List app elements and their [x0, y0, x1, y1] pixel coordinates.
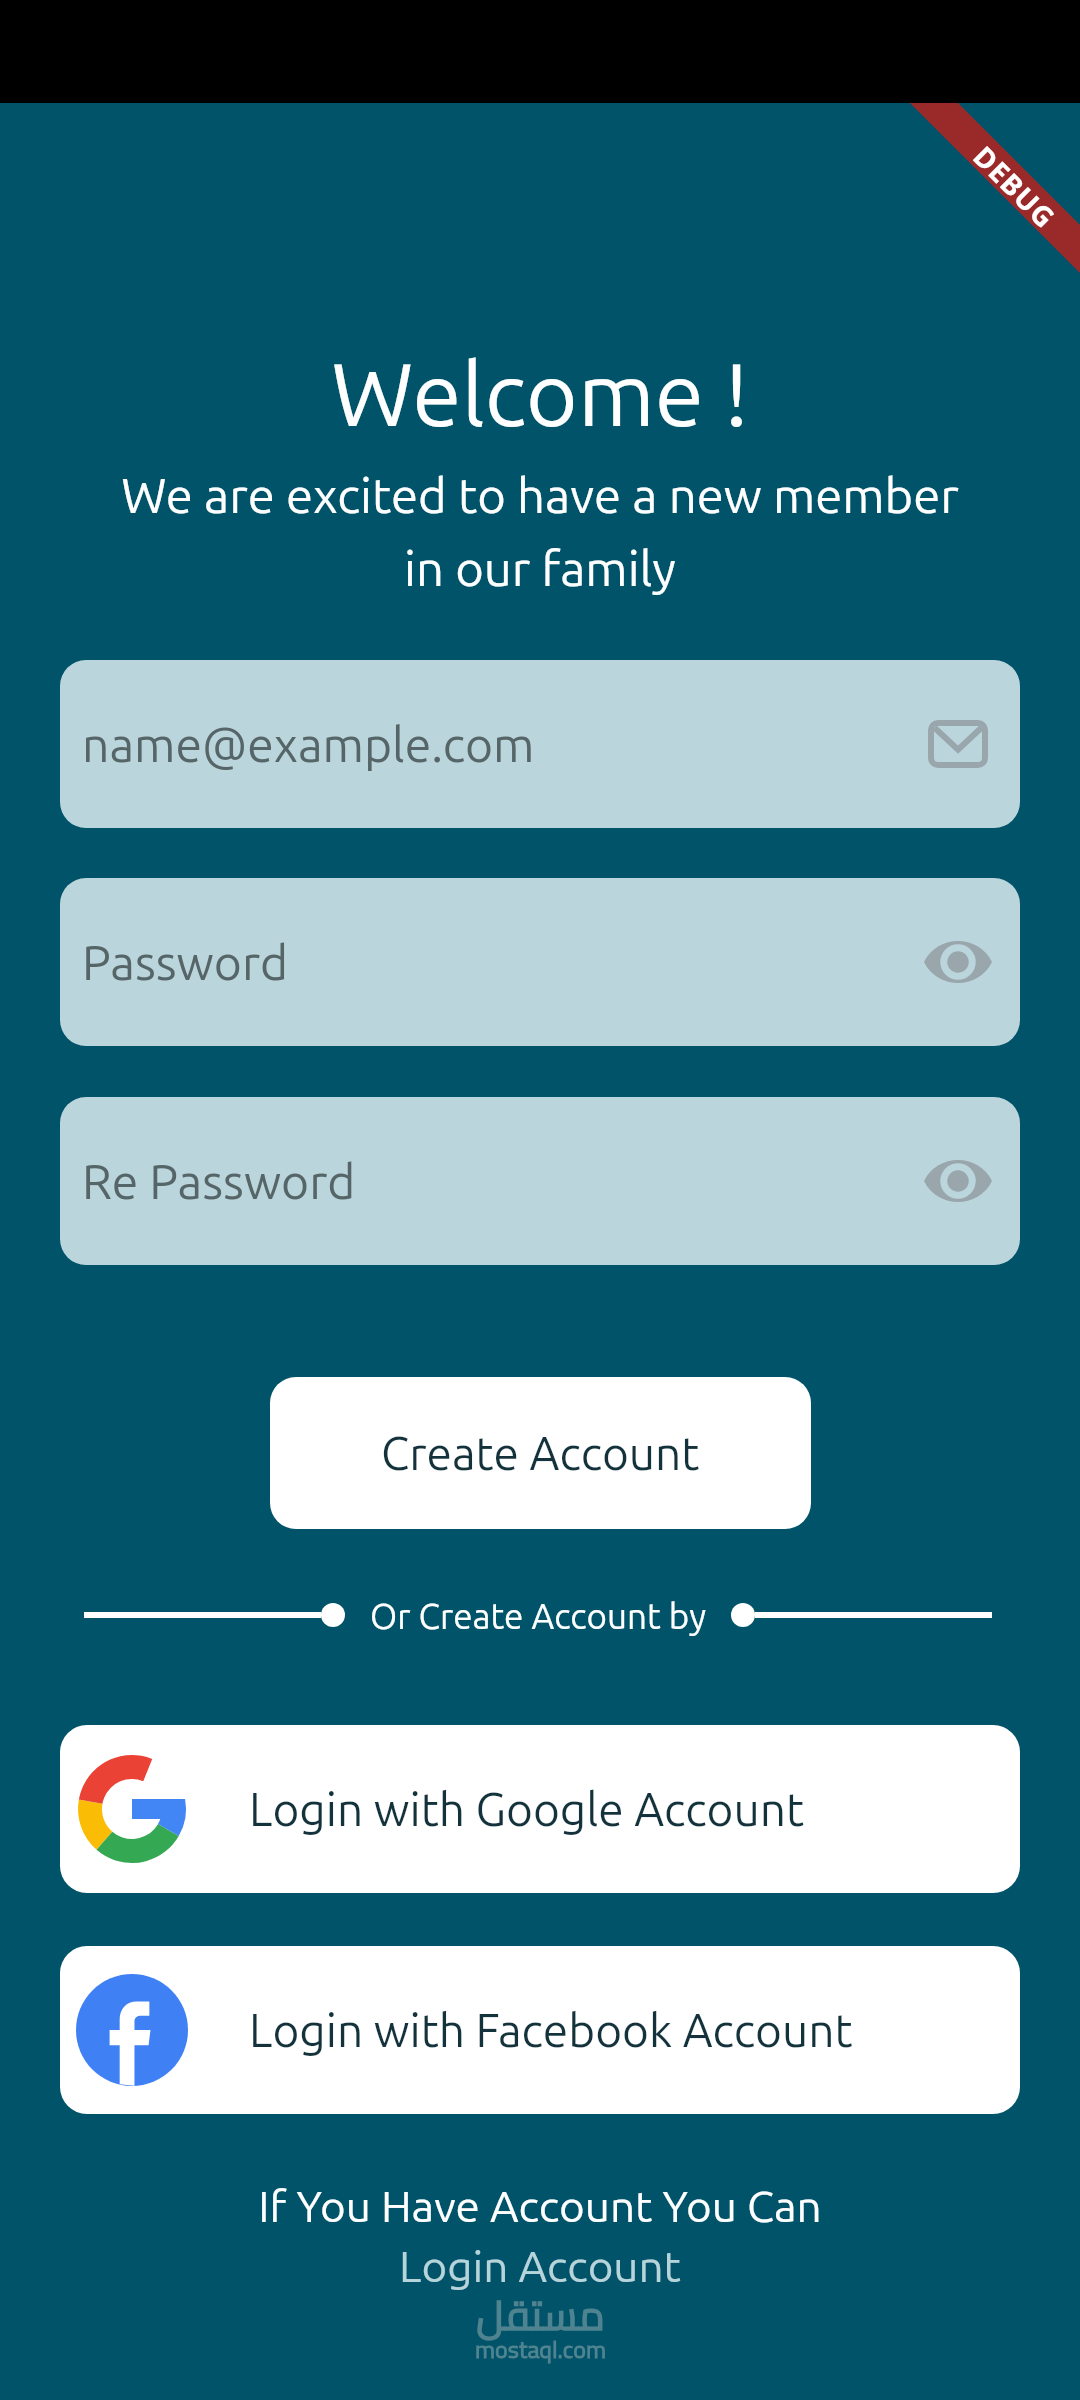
staticText: We are excited to have a new member in o… [0, 467, 1080, 595]
staticText: mostaql.com [475, 2327, 606, 2372]
staticText: Login with Google Account [249, 1783, 805, 1835]
staticText: مستقل [476, 2277, 605, 2354]
staticText: Welcome ! [0, 343, 1080, 443]
staticText: Login with Facebook Account [249, 2004, 853, 2056]
button[interactable]: Show password [908, 912, 1008, 1012]
button[interactable]: Re Password [60, 1097, 1020, 1265]
staticText: Create Account [381, 1427, 700, 1479]
button[interactable]: Create Account [270, 1377, 811, 1529]
staticText: Or Create Account by [370, 1596, 707, 1635]
staticText: If You Have Account You Can [0, 2181, 1080, 2230]
button[interactable]: Show password [908, 1131, 1008, 1231]
button[interactable]: Login with Google Account [60, 1725, 1020, 1893]
staticText: DEBUG [968, 137, 1065, 234]
button[interactable]: Email [908, 694, 1008, 794]
button[interactable]: Password [60, 878, 1020, 1046]
button[interactable]: Login Account [399, 2241, 681, 2290]
button[interactable]: name@example.com [60, 660, 1020, 828]
staticText: Re Password [82, 1154, 356, 1208]
staticText: name@example.com [82, 717, 535, 771]
staticText: Password [82, 935, 289, 989]
button[interactable]: Login with Facebook Account [60, 1946, 1020, 2114]
